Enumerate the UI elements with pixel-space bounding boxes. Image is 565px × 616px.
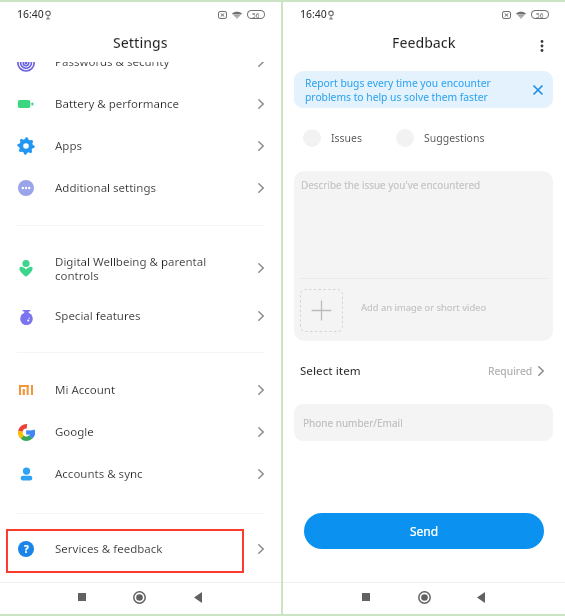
staticText: Accounts & sync bbox=[55, 466, 241, 482]
staticText: 16:40 bbox=[300, 7, 327, 21]
staticText: Google bbox=[55, 424, 241, 440]
button[interactable]: Passwords & security bbox=[0, 62, 281, 83]
button[interactable]: Issues bbox=[303, 129, 363, 147]
staticText: Feedback bbox=[392, 33, 456, 52]
button[interactable]: Select item bbox=[283, 357, 565, 385]
staticText: 56 bbox=[252, 11, 260, 18]
button[interactable]: More options bbox=[531, 35, 553, 57]
button[interactable]: Home bbox=[410, 583, 438, 611]
staticText: Mi Account bbox=[55, 382, 241, 398]
button[interactable]: Mi Account bbox=[0, 369, 281, 411]
staticText: Select item bbox=[300, 363, 361, 379]
button[interactable]: Digital Wellbeing & parental controls bbox=[0, 241, 281, 295]
staticText: Battery & performance bbox=[55, 96, 241, 112]
staticText: Report bugs every time you encounter pro… bbox=[305, 76, 491, 104]
staticText: Apps bbox=[55, 138, 241, 154]
button[interactable]: Dismiss banner bbox=[527, 79, 548, 100]
button[interactable]: Add an image or short video bbox=[300, 289, 343, 332]
button[interactable]: Phone number/Email bbox=[294, 404, 553, 441]
button[interactable]: Recents bbox=[68, 583, 96, 611]
staticText: Settings bbox=[113, 33, 168, 52]
staticText: Required bbox=[488, 364, 533, 378]
staticText: Describe the issue you've encountered bbox=[301, 178, 481, 191]
staticText: ? bbox=[24, 542, 29, 556]
staticText: 16:40 bbox=[17, 7, 44, 21]
staticText: Digital Wellbeing & parental controls bbox=[55, 254, 241, 283]
staticText: Special features bbox=[55, 308, 241, 324]
button[interactable]: Additional settings bbox=[0, 167, 281, 209]
button[interactable]: Accounts & sync bbox=[0, 453, 281, 495]
button[interactable]: Special features bbox=[0, 295, 281, 337]
button[interactable]: Back bbox=[184, 583, 212, 611]
button[interactable]: Battery & performance bbox=[0, 83, 281, 125]
button[interactable]: Send bbox=[304, 513, 544, 549]
staticText: Phone number/Email bbox=[303, 416, 403, 430]
staticText: 56 bbox=[536, 11, 544, 18]
button[interactable]: ? bbox=[0, 536, 281, 561]
staticText: Issues bbox=[331, 131, 363, 145]
staticText: Services & feedback bbox=[55, 541, 241, 557]
button[interactable]: Home bbox=[125, 583, 153, 611]
staticText: Add an image or short video bbox=[361, 301, 487, 314]
staticText: Send bbox=[410, 523, 439, 539]
button[interactable]: Suggestions bbox=[396, 129, 485, 147]
staticText: Passwords & security bbox=[55, 62, 241, 70]
staticText: Additional settings bbox=[55, 180, 241, 196]
button[interactable]: Back bbox=[467, 583, 495, 611]
button[interactable]: Recents bbox=[352, 583, 380, 611]
staticText: Suggestions bbox=[424, 131, 485, 145]
button[interactable]: Google bbox=[0, 411, 281, 453]
button[interactable]: Apps bbox=[0, 125, 281, 167]
